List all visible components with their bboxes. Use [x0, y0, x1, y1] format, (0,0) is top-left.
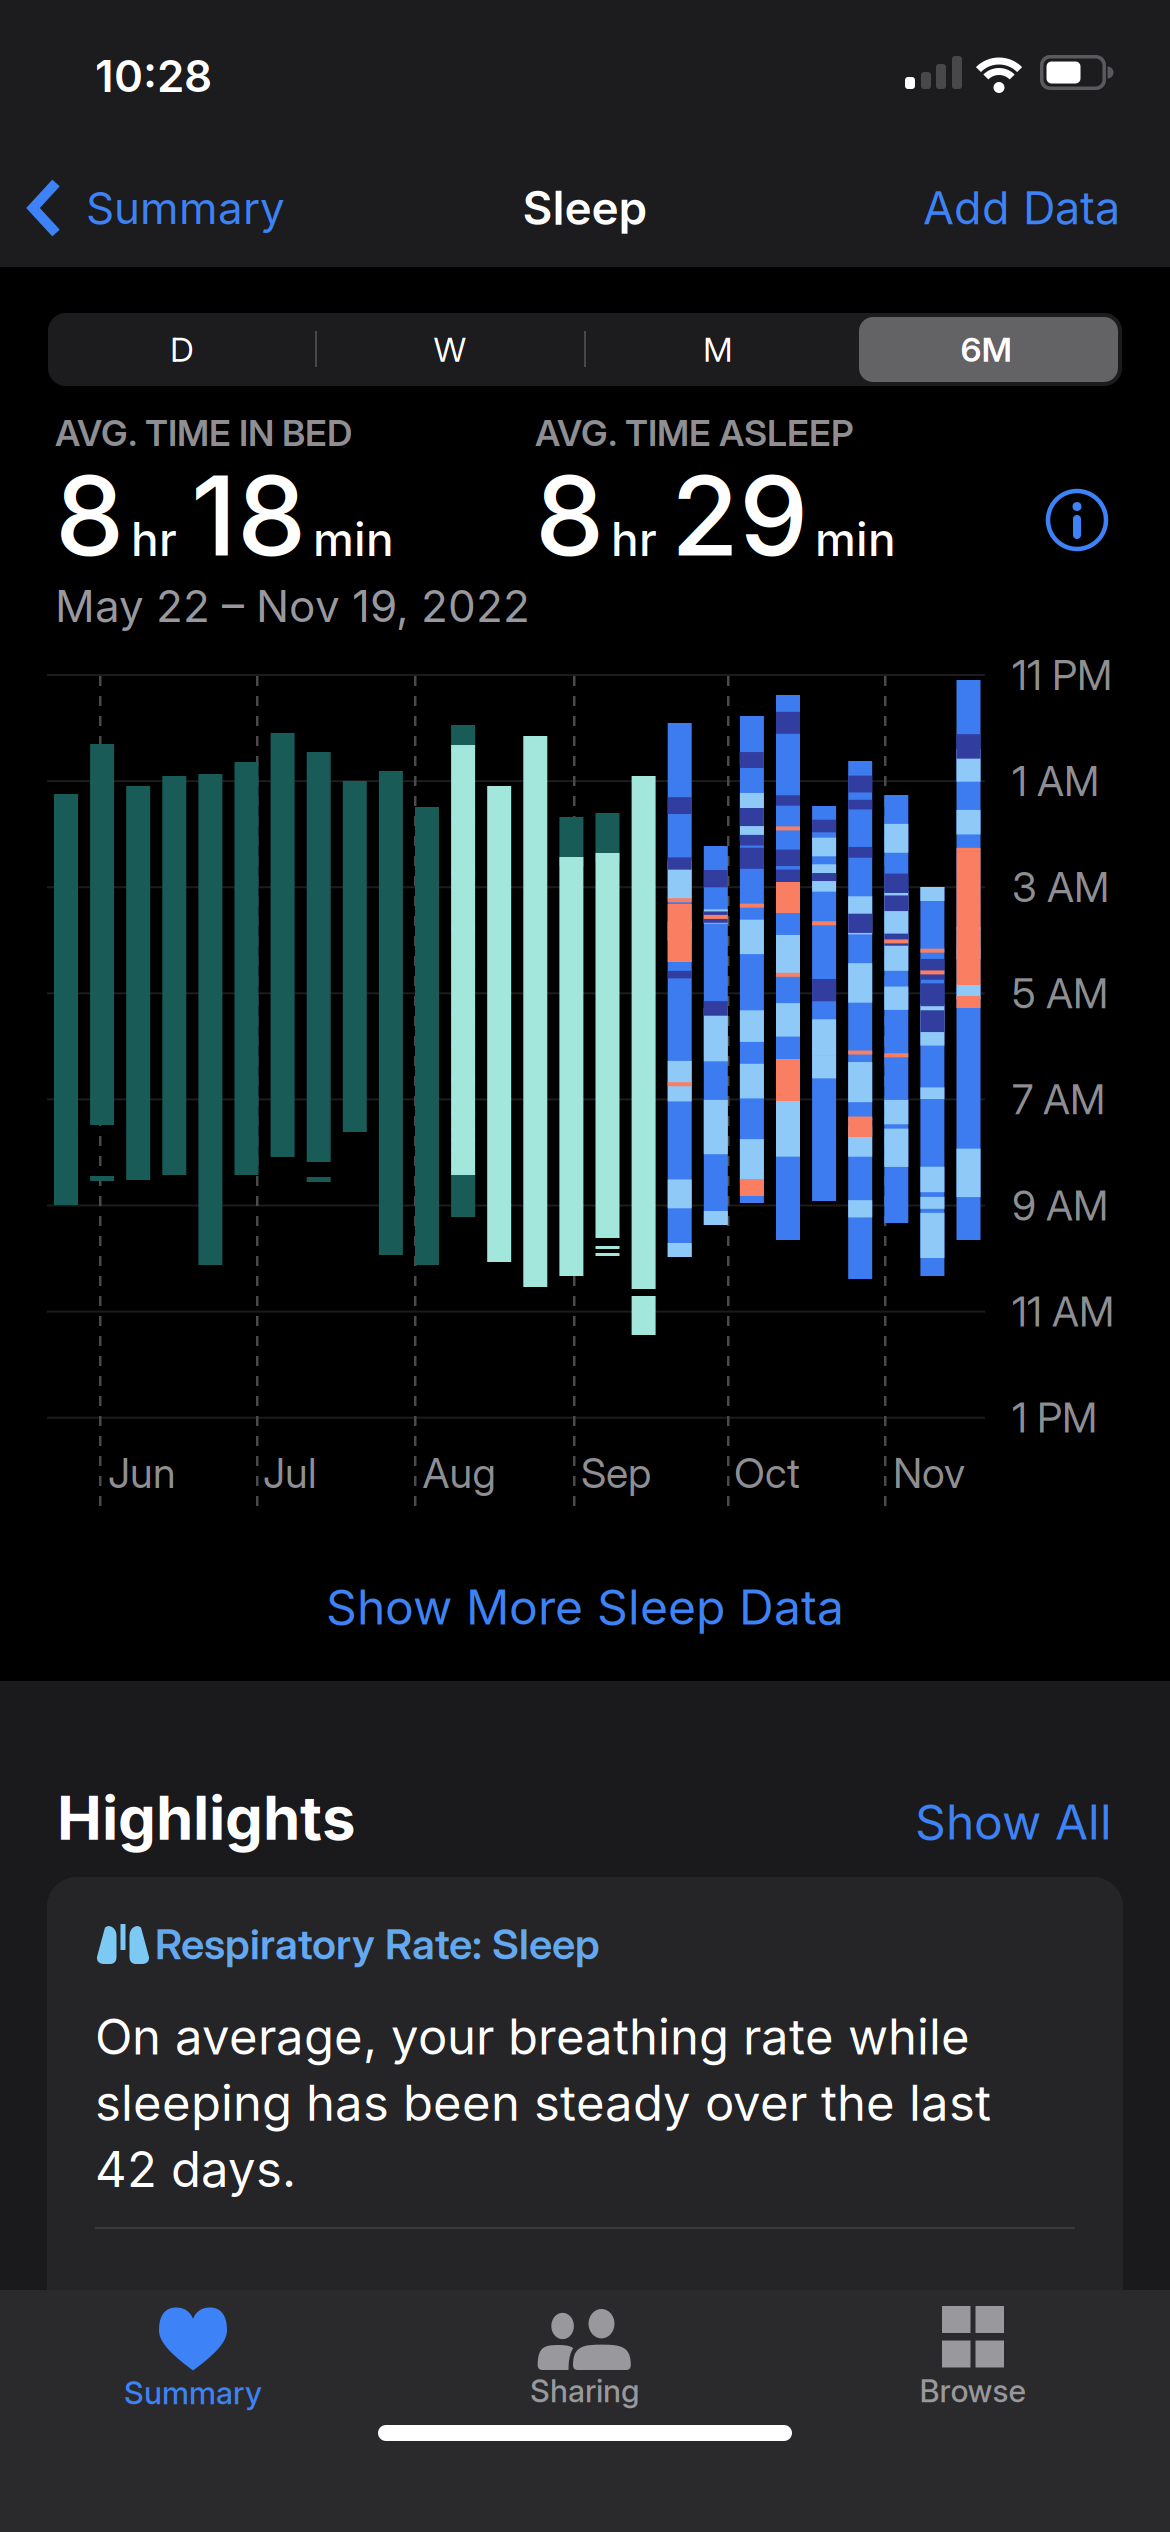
button[interactable]: Sharing: [435, 2305, 735, 2425]
staticText: Summary: [86, 181, 285, 235]
staticText: 29: [671, 449, 808, 582]
staticText: Sharing: [530, 2372, 640, 2410]
staticText: Add Data: [923, 181, 1120, 235]
staticText: 3 AM: [1012, 862, 1109, 912]
staticText: M: [703, 329, 733, 370]
button[interactable]: Show All: [812, 1792, 1112, 1852]
button[interactable]: Summary: [26, 168, 285, 248]
staticText: 42 days.: [95, 2140, 296, 2199]
staticText: sleeping has been steady over the last: [95, 2073, 991, 2133]
staticText: Show All: [915, 1793, 1112, 1851]
staticText: Jul: [263, 1448, 317, 1498]
button[interactable]: Show More Sleep Data: [0, 1572, 1170, 1642]
staticText: AVG. TIME ASLEEP: [535, 411, 854, 455]
staticText: hr: [611, 511, 657, 567]
staticText: Sep: [581, 1448, 651, 1498]
staticText: 5 AM: [1012, 968, 1108, 1018]
staticText: AVG. TIME IN BED: [55, 411, 352, 455]
staticText: 8: [55, 449, 124, 582]
staticText: 18: [191, 449, 306, 582]
staticText: Aug: [422, 1448, 495, 1498]
button[interactable]: W: [316, 313, 584, 386]
staticText: On average, your breathing rate while: [95, 2007, 970, 2066]
staticText: W: [433, 329, 466, 370]
staticText: Summary: [124, 2374, 262, 2412]
button[interactable]: 6M: [852, 313, 1120, 386]
staticText: hr: [131, 511, 177, 567]
button[interactable]: Add Data: [870, 168, 1120, 248]
button[interactable]: Browse: [823, 2305, 1123, 2425]
staticText: 11 PM: [1012, 650, 1112, 700]
staticText: May 22 – Nov 19, 2022: [55, 579, 530, 633]
staticText: 6M: [960, 329, 1011, 370]
staticText: D: [170, 329, 194, 370]
staticText: min: [815, 511, 896, 567]
staticText: Nov: [893, 1448, 965, 1498]
staticText: Browse: [919, 2372, 1026, 2410]
staticText: Oct: [734, 1448, 800, 1498]
staticText: 8: [535, 449, 604, 582]
staticText: Highlights: [57, 1782, 356, 1854]
staticText: Jun: [108, 1448, 176, 1498]
button[interactable]: About Sleep: [1045, 488, 1109, 552]
button[interactable]: Respiratory Rate: Sleep: [47, 1877, 1123, 2532]
staticText: Show More Sleep Data: [326, 1578, 844, 1636]
staticText: Sleep: [522, 180, 647, 236]
button[interactable]: D: [48, 313, 316, 386]
staticText: 11 AM: [1012, 1287, 1114, 1336]
button[interactable]: Summary: [43, 2307, 343, 2427]
staticText: 10:28: [95, 49, 212, 103]
staticText: min: [313, 511, 394, 567]
staticText: 7 AM: [1012, 1075, 1105, 1124]
staticText: 1 AM: [1012, 756, 1099, 806]
staticText: Respiratory Rate: Sleep: [155, 1919, 600, 1969]
staticText: 1 PM: [1012, 1393, 1097, 1442]
button[interactable]: M: [584, 313, 852, 386]
staticText: 9 AM: [1012, 1181, 1108, 1230]
